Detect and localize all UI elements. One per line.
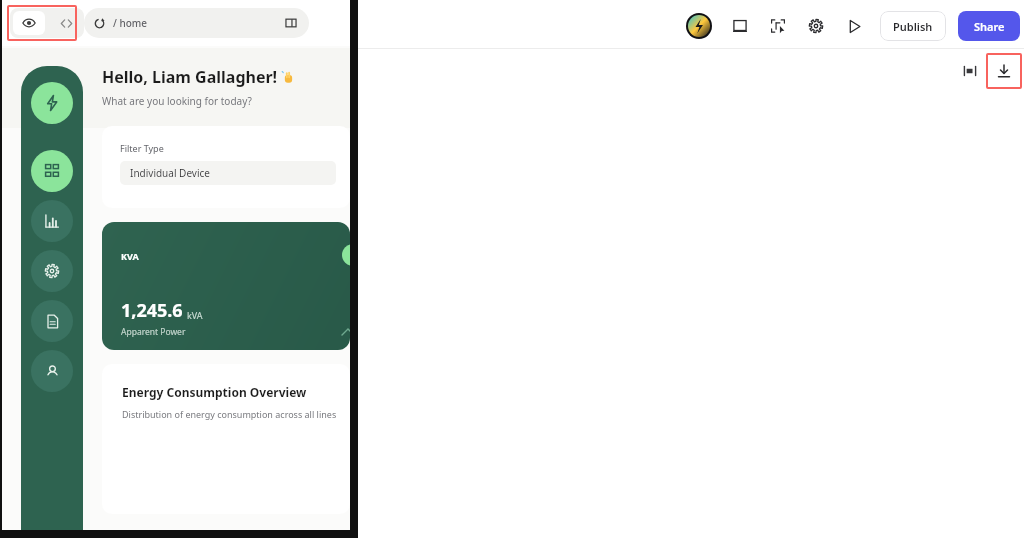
staticText: Apparent Power — [121, 326, 186, 338]
staticText: 1,245.6 — [121, 298, 183, 323]
button[interactable]: Inspect — [766, 14, 790, 38]
button[interactable]: Settings — [804, 14, 828, 38]
staticText: Publish — [893, 19, 933, 34]
button[interactable]: Align — [960, 61, 980, 81]
button[interactable]: Reports — [31, 300, 73, 342]
button[interactable]: KVA — [102, 222, 350, 350]
staticText: Hello, Liam Gallagher! — [102, 66, 278, 88]
button[interactable]: Run — [842, 14, 866, 38]
button[interactable]: Energy — [31, 82, 73, 124]
button[interactable]: Download — [988, 55, 1020, 87]
button[interactable]: Responsive view — [285, 17, 297, 29]
staticText: Share — [974, 19, 1005, 34]
button[interactable]: Dashboard — [31, 150, 73, 192]
button[interactable]: Share — [958, 11, 1020, 41]
button[interactable]: Preview — [13, 11, 45, 35]
button[interactable]: Layers — [728, 14, 752, 38]
staticText: Individual Device — [130, 166, 210, 180]
staticText: / home — [113, 16, 148, 30]
button[interactable]: App logo — [686, 13, 712, 39]
staticText: Energy Consumption Overview — [122, 384, 307, 400]
button[interactable]: Settings — [31, 250, 73, 292]
staticText: KVA — [121, 250, 139, 262]
button[interactable]: Energy Consumption Overview — [102, 364, 350, 514]
button[interactable]: Publish — [880, 11, 946, 41]
button[interactable]: Code — [51, 11, 81, 35]
staticText: Distribution of energy consumption acros… — [122, 408, 337, 420]
staticText: Filter Type — [120, 142, 164, 154]
button[interactable]: Profile — [31, 350, 73, 392]
button[interactable]: / home — [84, 8, 309, 38]
staticText: kVA — [187, 309, 203, 321]
button[interactable]: Individual Device — [120, 161, 336, 185]
button[interactable]: Analytics — [31, 200, 73, 242]
button[interactable]: Filter Type — [102, 126, 350, 208]
staticText: What are you looking for today? — [102, 94, 252, 108]
